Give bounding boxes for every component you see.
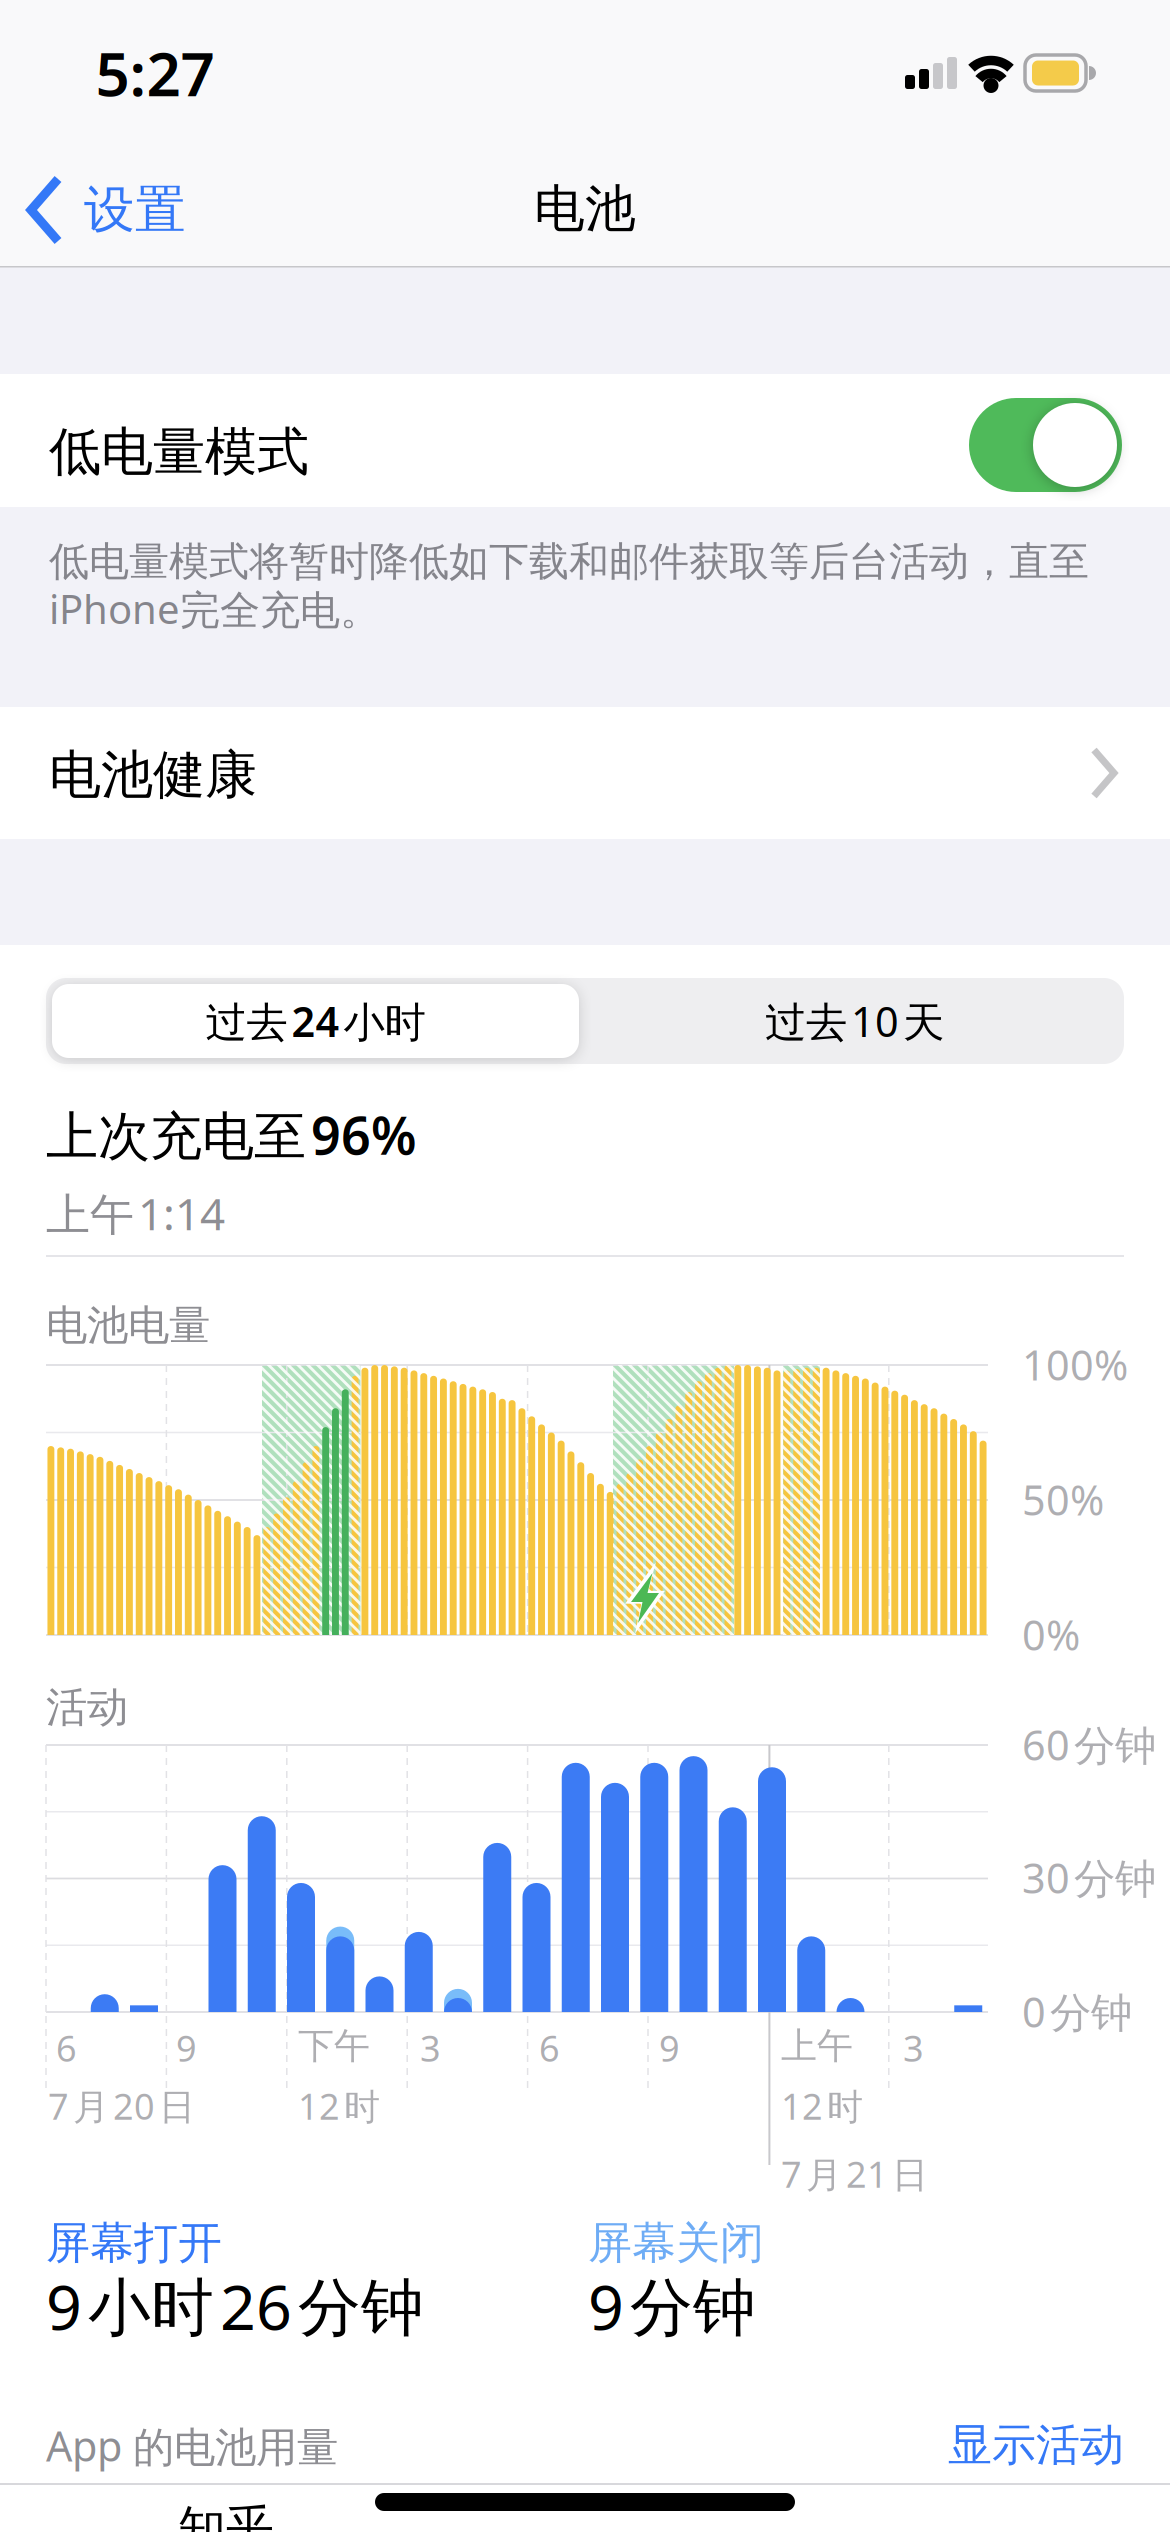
staticText: 屏幕关闭 — [588, 2216, 764, 2270]
staticText: 6 — [56, 2024, 77, 2072]
staticText: 12 时 — [298, 2082, 380, 2130]
staticText: 30 分钟 — [1022, 1850, 1156, 1905]
staticText: 50% — [1022, 1472, 1104, 1527]
staticText: 3 — [903, 2024, 924, 2072]
staticText: 3 — [420, 2024, 441, 2072]
staticText: 9 小时 26 分钟 — [46, 2264, 424, 2347]
staticText: 0% — [1022, 1607, 1080, 1662]
staticText: 过去 24 小时 — [205, 994, 425, 1048]
staticText: 屏幕打开 — [46, 2216, 222, 2270]
staticText: 9 — [659, 2024, 680, 2072]
button[interactable]: 设置 — [28, 177, 186, 243]
staticText: 下午 — [298, 2024, 370, 2068]
staticText: 7 月 20 日 — [48, 2082, 195, 2130]
staticText: 知乎 — [178, 2499, 274, 2532]
staticText: 60 分钟 — [1022, 1717, 1156, 1772]
staticText: 上午 — [781, 2024, 853, 2068]
button[interactable]: 显示活动 — [948, 2418, 1124, 2472]
button[interactable]: 电池健康 — [0, 707, 1170, 839]
button[interactable]: 过去 10 天 — [585, 978, 1124, 1064]
staticText: 低电量模式 — [49, 420, 309, 484]
staticText: 电池电量 — [46, 1300, 210, 1351]
staticText: 5:27 — [95, 33, 214, 113]
button[interactable]: 过去 24 小时 — [52, 984, 579, 1058]
staticText: 9 分钟 — [588, 2264, 756, 2347]
staticText: 100% — [1022, 1337, 1128, 1392]
staticText: 7 月 21 日 — [781, 2150, 928, 2198]
staticText: 低电量模式将暂时降低如下载和邮件获取等后台活动，直至 — [49, 537, 1089, 586]
button[interactable] — [969, 398, 1122, 492]
staticText: App 的电池用量 — [46, 2418, 338, 2473]
staticText: 9 — [176, 2024, 197, 2072]
staticText: 电池 — [534, 178, 636, 240]
staticText: 6 — [539, 2024, 560, 2072]
staticText: 电池健康 — [49, 743, 257, 807]
staticText: 显示活动 — [948, 2418, 1124, 2472]
button[interactable]: 知乎 — [178, 2499, 274, 2532]
staticText: 设置 — [84, 179, 186, 241]
staticText: 上午 1:14 — [46, 1184, 225, 1242]
staticText: 上次充电至 96% — [46, 1100, 417, 1169]
staticText: 过去 10 天 — [765, 994, 944, 1048]
staticText: iPhone完全充电。 — [49, 582, 380, 635]
staticText: 活动 — [46, 1682, 128, 1733]
staticText: 0 分钟 — [1022, 1984, 1132, 2039]
staticText: 12 时 — [781, 2082, 863, 2130]
